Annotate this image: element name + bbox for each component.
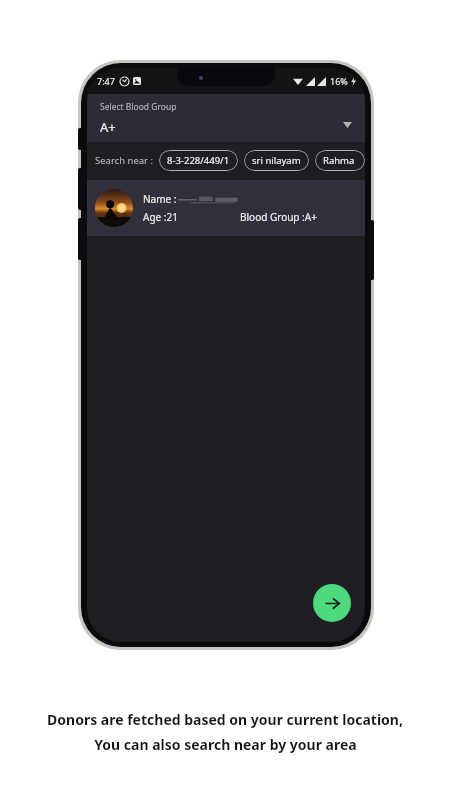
- staticText: You can also search near by your area: [94, 735, 357, 754]
- staticText: 8-3-228/449/1: [167, 154, 230, 167]
- button[interactable]: Next: [313, 584, 351, 622]
- button[interactable]: 8-3-228/449/1: [159, 150, 238, 171]
- staticText: Name :: [143, 192, 177, 206]
- button[interactable]: Name :: [87, 180, 365, 236]
- staticText: 16%: [330, 75, 348, 87]
- staticText: Search near :: [95, 154, 154, 167]
- button[interactable]: Rahmat N: [315, 150, 365, 171]
- staticText: Donors are fetched based on your current…: [47, 710, 403, 729]
- staticText: Blood Group :A+: [240, 210, 317, 224]
- button[interactable]: sri nilayam: [244, 150, 309, 171]
- button[interactable]: Select Blood Group: [87, 94, 365, 142]
- staticText: Age :21: [143, 210, 178, 224]
- staticText: A+: [100, 118, 116, 136]
- staticText: 7:47: [97, 75, 115, 87]
- staticText: Rahmat N: [323, 154, 357, 167]
- staticText: Select Blood Group: [100, 101, 177, 113]
- staticText: sri nilayam: [252, 154, 301, 167]
